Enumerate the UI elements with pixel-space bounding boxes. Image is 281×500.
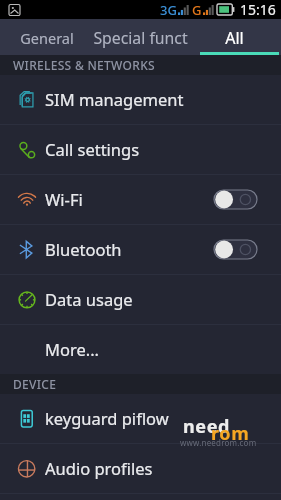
button[interactable]: Call settings	[0, 125, 281, 174]
staticText: More...	[45, 338, 100, 360]
staticText: G	[192, 1, 202, 19]
staticText: Audio profiles	[45, 457, 153, 479]
button[interactable]: Data usage	[0, 275, 281, 324]
button[interactable]: Bluetooth	[0, 225, 281, 274]
button[interactable]: More...	[0, 325, 281, 374]
button[interactable]: keyguard piflow	[0, 394, 281, 443]
staticText: www.needrom.com	[180, 437, 257, 448]
staticText: Wi-Fi	[45, 188, 83, 210]
staticText: Special funct	[94, 27, 188, 49]
staticText: All	[225, 27, 244, 49]
staticText: need	[183, 414, 230, 439]
staticText: rom	[211, 421, 250, 446]
staticText: 15:16	[240, 0, 276, 19]
staticText: Data usage	[45, 288, 133, 310]
staticText: 3G	[160, 1, 177, 19]
button[interactable]: Audio profiles	[0, 444, 281, 493]
button[interactable]: Toggle	[214, 240, 257, 259]
button[interactable]: Special funct	[94, 19, 194, 55]
button[interactable]: Wi-Fi	[0, 175, 281, 224]
staticText: Call settings	[45, 138, 140, 160]
button[interactable]: General	[0, 19, 94, 55]
staticText: General	[20, 28, 74, 48]
staticText: keyguard piflow	[45, 407, 169, 429]
staticText: DEVICE	[13, 376, 57, 392]
button[interactable]: Toggle	[214, 190, 257, 209]
staticText: WIRELESS & NETWORKS	[13, 57, 155, 73]
button[interactable]: SIM management	[0, 75, 281, 124]
staticText: SIM management	[45, 88, 184, 110]
button[interactable]: All	[194, 19, 281, 55]
staticText: Bluetooth	[45, 238, 122, 260]
